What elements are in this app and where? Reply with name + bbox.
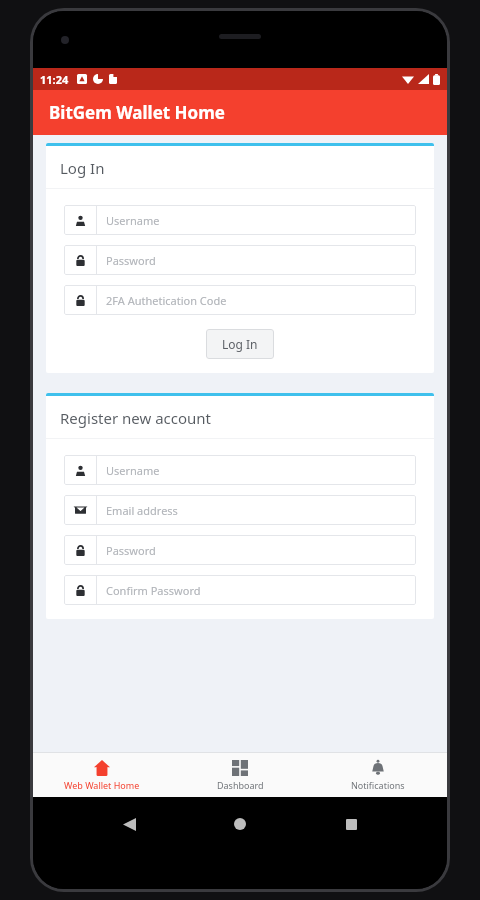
- staticText: Password: [106, 543, 156, 558]
- button[interactable]: Password: [64, 245, 416, 275]
- button[interactable]: Email address: [64, 495, 416, 525]
- button[interactable]: Notifications: [309, 753, 447, 797]
- button[interactable]: Back: [114, 809, 144, 839]
- button[interactable]: Recents: [336, 809, 366, 839]
- button[interactable]: Password: [64, 535, 416, 565]
- staticText: Log In: [222, 336, 258, 352]
- staticText: Notifications: [351, 779, 405, 791]
- staticText: Username: [106, 463, 160, 478]
- button[interactable]: Username: [64, 205, 416, 235]
- staticText: Web Wallet Home: [64, 779, 140, 791]
- staticText: Register new account: [60, 408, 212, 428]
- button[interactable]: Web Wallet Home: [33, 753, 171, 797]
- staticText: 2FA Authetication Code: [106, 293, 227, 308]
- staticText: Email address: [106, 503, 178, 518]
- button[interactable]: Dashboard: [171, 753, 309, 797]
- staticText: Dashboard: [217, 779, 264, 791]
- button[interactable]: 2FA Authetication Code: [64, 285, 416, 315]
- button[interactable]: Username: [64, 455, 416, 485]
- staticText: BitGem Wallet Home: [49, 101, 225, 124]
- staticText: Username: [106, 213, 160, 228]
- button[interactable]: Log In: [206, 329, 274, 359]
- staticText: Log In: [60, 158, 105, 178]
- staticText: Password: [106, 253, 156, 268]
- button[interactable]: Home: [225, 809, 255, 839]
- staticText: 11:24: [40, 72, 69, 87]
- button[interactable]: Confirm Password: [64, 575, 416, 605]
- staticText: Confirm Password: [106, 583, 201, 598]
